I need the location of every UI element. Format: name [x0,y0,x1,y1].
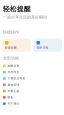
button[interactable]: 我的日程 [33,38,62,52]
button[interactable]: 通知管理 [0,82,64,88]
staticText: 新建提醒 [5,46,17,49]
button[interactable]: 下载的日程表 [0,75,64,82]
button[interactable]: 隐私 [0,94,64,100]
staticText: 日历同步 [8,70,20,74]
staticText: 下载的日程表 [8,77,26,80]
staticText: 通知管理 [8,83,20,86]
staticText: 我的日程 [36,46,48,49]
button[interactable]: 关于我们 [0,100,64,107]
staticText: 提醒设置 [8,64,20,67]
button[interactable]: 日历同步 [0,69,64,75]
staticText: 外观主题 [8,89,20,93]
button[interactable]: 提醒设置 [0,63,64,69]
button[interactable]: 新建提醒 [2,38,30,52]
staticText: 全部功能 [3,56,19,61]
staticText: 关于我们 [8,102,20,105]
staticText: 轻松提醒 [3,5,31,13]
staticText: 隐私 [8,96,14,99]
staticText: 一起分享生活的美好瞬间 [3,15,47,20]
staticText: 快捷操作 [3,30,19,34]
button[interactable]: 外观主题 [0,88,64,94]
